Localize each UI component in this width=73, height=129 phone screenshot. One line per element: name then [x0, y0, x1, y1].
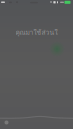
staticText: คุณมาใช้ส่วนใ	[15, 27, 57, 38]
